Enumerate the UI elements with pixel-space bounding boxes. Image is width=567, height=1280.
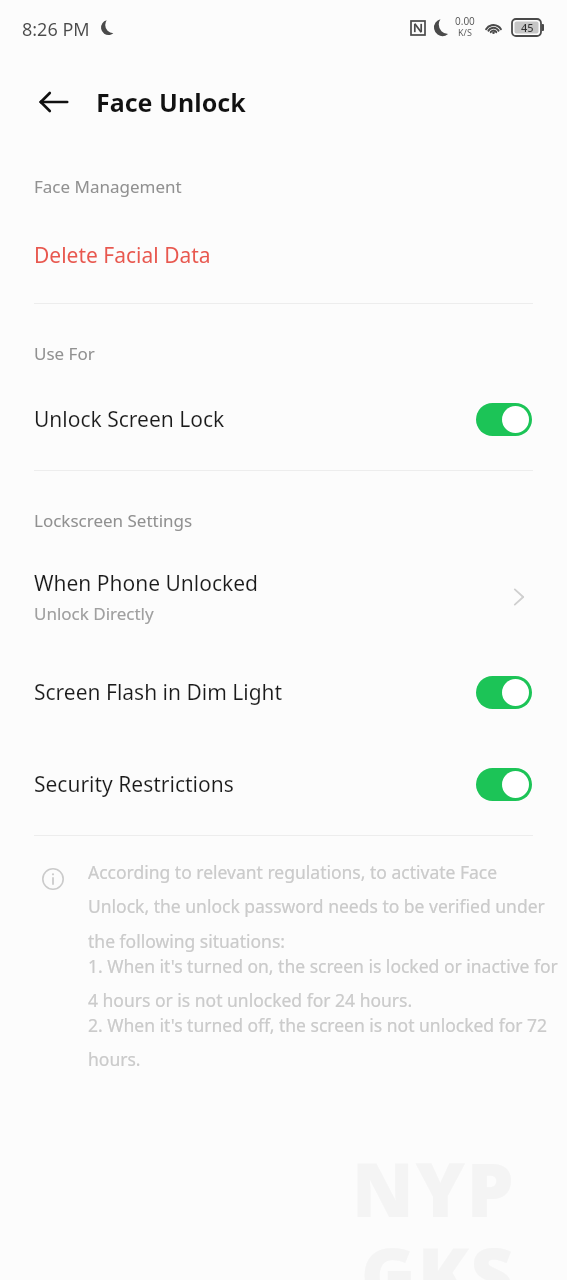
button[interactable]: Screen Flash in Dim Light	[0, 666, 567, 718]
button[interactable]: Screen Flash in Dim Light toggle, on	[476, 676, 532, 709]
button[interactable]: Security Restrictions	[0, 758, 567, 810]
button[interactable]: When Phone Unlocked	[0, 556, 567, 638]
staticText: NYP	[352, 1138, 516, 1239]
staticText: Face Management	[34, 175, 182, 198]
button[interactable]: Security Restrictions toggle, on	[476, 768, 532, 801]
staticText: Use For	[34, 342, 95, 365]
staticText: When Phone Unlocked	[34, 569, 258, 598]
staticText: Lockscreen Settings	[34, 509, 193, 532]
staticText: Unlock Directly	[34, 602, 154, 625]
staticText: According to relevant regulations, to ac…	[88, 860, 562, 954]
button[interactable]: Back	[30, 78, 78, 126]
staticText: Security Restrictions	[34, 770, 234, 799]
staticText: 8:26 PM	[22, 17, 90, 42]
button[interactable]: Delete Facial Data	[0, 228, 567, 282]
staticText: Delete Facial Data	[34, 241, 211, 270]
staticText: GKS	[361, 1223, 516, 1280]
staticText: Unlock Screen Lock	[34, 405, 225, 434]
button[interactable]: Unlock Screen Lock toggle, on	[476, 403, 532, 436]
staticText: Face Unlock	[96, 85, 246, 119]
staticText: Screen Flash in Dim Light	[34, 678, 283, 707]
button[interactable]: Unlock Screen Lock	[0, 393, 567, 445]
staticText: 2. When it's turned off, the screen is n…	[88, 1013, 562, 1072]
staticText: 0.00	[455, 14, 475, 28]
staticText: K/S	[458, 26, 472, 38]
staticText: 1. When it's turned on, the screen is lo…	[88, 954, 562, 1013]
staticText: 45	[521, 20, 534, 35]
